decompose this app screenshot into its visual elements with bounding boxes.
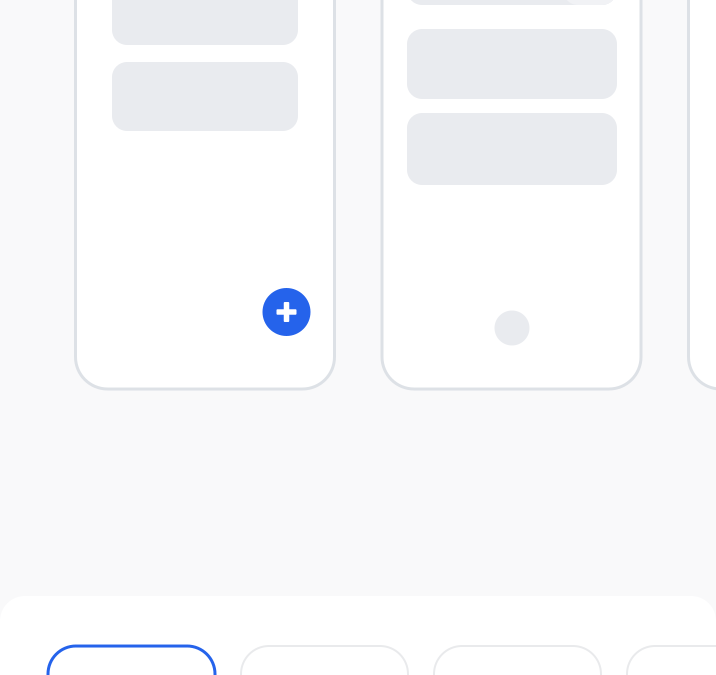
button[interactable]: Preview 1 [75,0,334,389]
button[interactable]: Page [627,646,716,675]
button[interactable]: Preview 2 [382,0,641,389]
button[interactable]: Selected page [48,646,215,675]
button[interactable]: Preview 3 [688,0,716,389]
button[interactable]: Add [262,288,310,336]
button[interactable]: Page [241,646,408,675]
button[interactable]: Page [434,646,601,675]
